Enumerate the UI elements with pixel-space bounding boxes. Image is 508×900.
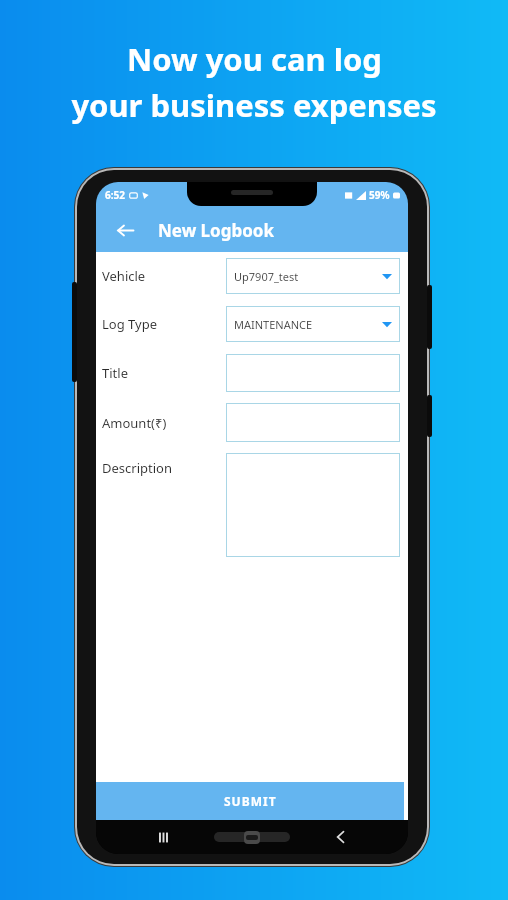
staticText: Log Type: [102, 315, 157, 333]
staticText: New Logbook: [158, 219, 275, 242]
staticText: Description: [102, 459, 172, 477]
button[interactable]: Home: [212, 824, 292, 850]
button[interactable]: SUBMIT: [96, 782, 404, 820]
button[interactable]: Recent apps: [150, 822, 180, 852]
staticText: 6:52: [105, 188, 125, 202]
button[interactable]: [226, 403, 400, 442]
staticText: Now you can log: [127, 38, 382, 80]
staticText: SUBMIT: [224, 793, 277, 809]
staticText: MAINTENANCE: [234, 317, 382, 332]
staticText: your business expenses: [71, 84, 437, 126]
staticText: Amount(₹): [102, 414, 167, 432]
staticText: Vehicle: [102, 267, 146, 285]
button[interactable]: MAINTENANCE: [226, 306, 400, 342]
staticText: 59%: [369, 188, 390, 202]
staticText: Up7907_test: [234, 269, 382, 284]
button[interactable]: Back: [108, 213, 142, 247]
staticText: Title: [102, 364, 128, 382]
button[interactable]: [226, 453, 400, 557]
button[interactable]: Back: [326, 822, 356, 852]
button[interactable]: Up7907_test: [226, 258, 400, 294]
button[interactable]: [226, 354, 400, 392]
